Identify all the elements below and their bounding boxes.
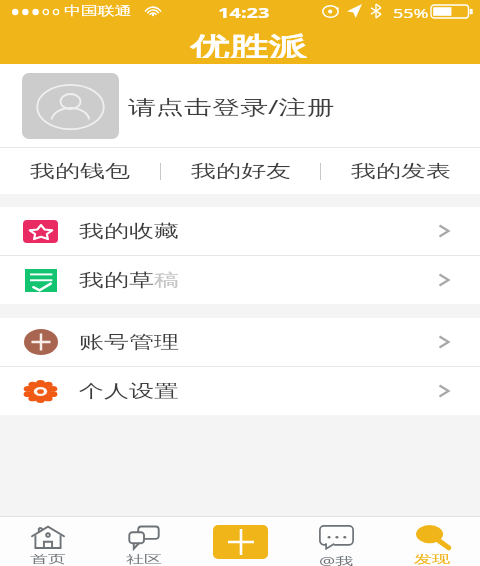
button[interactable]: 我的好友: [161, 148, 320, 194]
staticText: 首页: [30, 552, 66, 566]
staticText: 我的草: [79, 270, 154, 291]
staticText: 55%: [393, 5, 429, 21]
button[interactable]: 请点击登录/注册: [0, 64, 480, 148]
button[interactable]: 首页: [0, 517, 96, 566]
button[interactable]: 发现: [384, 517, 480, 566]
button[interactable]: 个人设置: [0, 367, 480, 415]
button[interactable]: 社区: [96, 517, 192, 566]
staticText: 账号管理: [79, 332, 179, 353]
staticText: 稿: [154, 270, 179, 291]
button[interactable]: @我: [288, 517, 384, 566]
staticText: 请点击登录/注册: [128, 93, 335, 119]
button[interactable]: 我的草: [0, 256, 480, 304]
staticText: 发现: [414, 552, 450, 566]
staticText: @我: [319, 553, 354, 566]
staticText: 14:23: [218, 4, 270, 20]
button[interactable]: 我的发表: [321, 148, 480, 194]
staticText: 我的收藏: [79, 221, 179, 242]
staticText: 我的发表: [351, 161, 451, 182]
staticText: 我的好友: [191, 161, 291, 182]
button[interactable]: 账号管理: [0, 318, 480, 366]
button[interactable]: Add: [192, 517, 288, 566]
staticText: 我的钱包: [30, 161, 130, 182]
staticText: 中国联通: [64, 4, 132, 19]
staticText: 社区: [126, 552, 162, 566]
button[interactable]: 我的收藏: [0, 207, 480, 255]
button[interactable]: 我的钱包: [0, 148, 160, 194]
staticText: 优胜派: [190, 30, 307, 58]
staticText: 个人设置: [79, 381, 179, 402]
